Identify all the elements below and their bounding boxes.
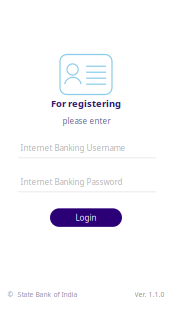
staticText: please enter — [62, 116, 110, 126]
staticText: Login — [75, 212, 96, 223]
staticText: Ver. 1.1.0 — [134, 290, 164, 299]
staticText: Internet Banking Password — [20, 177, 122, 187]
button[interactable]: Login — [50, 208, 122, 227]
staticText: © State Bank of India — [7, 290, 77, 299]
staticText: For registering — [51, 97, 121, 110]
staticText: Internet Banking Username — [20, 143, 125, 153]
